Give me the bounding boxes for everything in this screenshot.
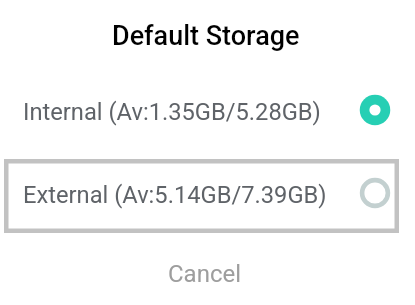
staticText: Cancel	[168, 260, 242, 288]
staticText: Default Storage	[112, 20, 300, 52]
other: Selected	[359, 94, 391, 126]
button[interactable]: Cancel	[141, 251, 269, 297]
staticText: External (Av:5.14GB/7.39GB)	[23, 181, 327, 209]
button[interactable]: External (Av:5.14GB/7.39GB)	[4, 159, 399, 233]
staticText: Internal (Av:1.35GB/5.28GB)	[23, 98, 321, 126]
button[interactable]: Internal (Av:1.35GB/5.28GB)	[0, 84, 415, 136]
other: Not selected	[359, 177, 391, 209]
